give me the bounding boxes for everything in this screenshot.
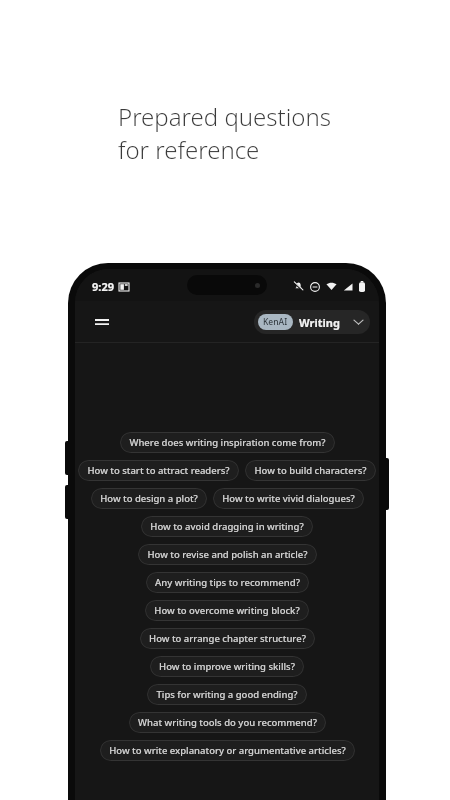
staticText: How to arrange chapter structure? xyxy=(149,632,306,645)
staticText: How to write explanatory or argumentativ… xyxy=(109,744,346,757)
button[interactable]: How to design a plot? xyxy=(91,488,207,509)
staticText: How to overcome writing block? xyxy=(154,604,300,617)
staticText: How to build characters? xyxy=(254,464,367,477)
button[interactable]: Tips for writing a good ending? xyxy=(147,684,307,705)
button[interactable]: How to avoid dragging in writing? xyxy=(141,516,313,537)
staticText: What writing tools do you recommend? xyxy=(138,716,317,729)
button[interactable]: How to improve writing skills? xyxy=(150,656,304,677)
staticText: Prepared questions xyxy=(118,100,331,133)
button[interactable]: Where does writing inspiration come from… xyxy=(120,432,335,453)
staticText: Where does writing inspiration come from… xyxy=(129,436,326,449)
button[interactable]: Menu xyxy=(87,307,117,337)
staticText: Writing xyxy=(299,315,340,330)
staticText: How to revise and polish an article? xyxy=(147,548,308,561)
staticText: How to start to attract readers? xyxy=(87,464,230,477)
staticText: 9:29 xyxy=(92,279,114,294)
staticText: Tips for writing a good ending? xyxy=(156,688,298,701)
button[interactable]: How to build characters? xyxy=(245,460,376,481)
staticText: for reference xyxy=(118,133,260,166)
staticText: How to write vivid dialogues? xyxy=(222,492,355,505)
button[interactable]: What writing tools do you recommend? xyxy=(129,712,326,733)
button[interactable]: How to write vivid dialogues? xyxy=(213,488,364,509)
staticText: KenAI xyxy=(263,316,288,328)
button[interactable]: Any writing tips to recommend? xyxy=(146,572,309,593)
staticText: How to improve writing skills? xyxy=(159,660,295,673)
button[interactable]: How to write explanatory or argumentativ… xyxy=(100,740,355,761)
button[interactable]: KenAI xyxy=(254,310,370,334)
button[interactable]: How to overcome writing block? xyxy=(145,600,309,621)
button[interactable]: How to start to attract readers? xyxy=(78,460,239,481)
staticText: How to design a plot? xyxy=(100,492,198,505)
button[interactable]: How to revise and polish an article? xyxy=(138,544,317,565)
staticText: How to avoid dragging in writing? xyxy=(150,520,304,533)
staticText: Any writing tips to recommend? xyxy=(155,576,300,589)
button[interactable]: How to arrange chapter structure? xyxy=(140,628,315,649)
